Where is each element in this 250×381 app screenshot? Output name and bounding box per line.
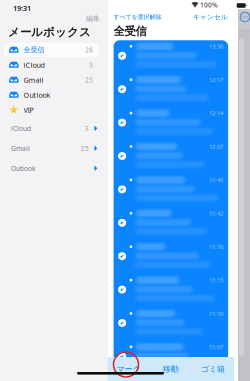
staticText: VIP xyxy=(24,105,34,115)
button[interactable]: 編集 xyxy=(86,13,107,24)
button[interactable]: More xyxy=(238,0,250,22)
staticText: 12:07 xyxy=(209,142,223,150)
staticText: 11:16 xyxy=(209,243,223,251)
staticText: iCloud xyxy=(24,60,45,70)
staticText: 11:10 xyxy=(209,309,223,317)
staticText: 移動 xyxy=(163,364,179,374)
button[interactable]: Gmail xyxy=(0,138,107,158)
button[interactable]: 11:15 xyxy=(114,274,228,307)
staticText: 3 xyxy=(85,124,89,133)
staticText: 13:30 xyxy=(209,42,223,50)
staticText: 3 xyxy=(89,60,93,69)
button[interactable]: Gmail xyxy=(0,72,99,87)
staticText: マーク xyxy=(117,364,141,374)
staticText: 25 xyxy=(85,75,93,84)
staticText: 11:07 xyxy=(209,343,223,351)
button[interactable]: 12:14 xyxy=(114,107,228,140)
button[interactable]: ゴミ箱 xyxy=(192,364,234,374)
button[interactable]: 12:07 xyxy=(114,140,228,174)
staticText: 全受信 xyxy=(24,45,45,54)
button[interactable]: iCloud xyxy=(0,118,107,138)
staticText: Gmail xyxy=(11,144,30,153)
button[interactable]: 13:30 xyxy=(114,40,228,74)
button[interactable]: マーク xyxy=(108,364,150,374)
button[interactable]: 11:42 xyxy=(114,207,228,241)
staticText: Outlook xyxy=(24,90,51,100)
staticText: 11:15 xyxy=(209,276,223,284)
staticText: 12:14 xyxy=(209,109,223,117)
staticText: 19:31 xyxy=(13,3,31,13)
button[interactable]: 全受信 xyxy=(0,42,99,57)
button[interactable]: 11:07 xyxy=(114,341,228,374)
button[interactable]: キャンセル xyxy=(193,11,228,23)
staticText: Gmail xyxy=(24,75,44,85)
button[interactable]: 11:10 xyxy=(114,307,228,341)
button[interactable]: 移動 xyxy=(150,364,192,374)
staticText: 11:45 xyxy=(209,176,223,184)
staticText: ゴミ箱 xyxy=(201,364,225,374)
staticText: 12:17 xyxy=(209,76,223,84)
staticText: Outlook xyxy=(11,164,36,173)
staticText: 11:42 xyxy=(209,209,223,217)
staticText: すべてを選択解除 xyxy=(114,13,162,21)
staticText: iCloud xyxy=(11,124,31,133)
button[interactable]: VIP xyxy=(0,102,99,117)
button[interactable]: すべてを選択解除 xyxy=(114,11,162,23)
staticText: 全受信 xyxy=(114,24,147,38)
staticText: メールボックス xyxy=(8,25,91,39)
button[interactable]: Outlook xyxy=(0,158,107,178)
button[interactable]: 11:45 xyxy=(114,174,228,207)
staticText: キャンセル xyxy=(193,13,228,21)
button[interactable]: 12:17 xyxy=(114,74,228,107)
button[interactable]: Outlook xyxy=(0,87,99,102)
staticText: 編集 xyxy=(86,14,100,23)
button[interactable]: 11:16 xyxy=(114,241,228,274)
staticText: 28 xyxy=(85,45,93,54)
button[interactable]: iCloud xyxy=(0,57,99,72)
staticText: 25 xyxy=(81,144,89,153)
staticText: 100% xyxy=(200,0,218,10)
